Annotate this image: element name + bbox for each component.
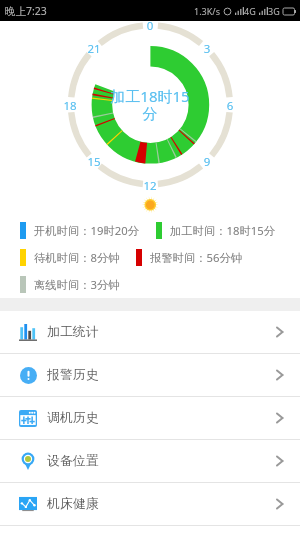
staticText: 报警时间：56分钟 — [150, 250, 243, 265]
staticText: 加工18时15分 — [110, 86, 190, 123]
staticText: 4G — [244, 5, 256, 17]
staticText: 加工统计 — [47, 324, 99, 340]
staticText: 晚上7:23 — [5, 4, 47, 18]
staticText: 18 — [55, 98, 85, 114]
button[interactable]: 调机历史 — [0, 397, 300, 439]
staticText: 3G — [268, 5, 280, 17]
staticText: 9 — [192, 154, 222, 170]
staticText: 15 — [79, 154, 109, 170]
button[interactable]: 加工统计 — [0, 311, 300, 353]
staticText: 开机时间：19时20分 — [34, 223, 139, 238]
button[interactable]: 设备位置 — [0, 440, 300, 482]
staticText: 加工时间：18时15分 — [170, 223, 275, 238]
staticText: 6 — [215, 98, 245, 114]
button[interactable]: 机床健康 — [0, 483, 300, 525]
staticText: 调机历史 — [47, 410, 99, 426]
staticText: 1.3K/s — [194, 5, 220, 17]
staticText: 离线时间：3分钟 — [34, 277, 120, 292]
button[interactable]: 报警历史 — [0, 354, 300, 396]
staticText: 报警历史 — [47, 367, 99, 383]
staticText: 21 — [79, 41, 109, 57]
staticText: 机床健康 — [47, 496, 99, 512]
staticText: 0 — [135, 18, 165, 34]
staticText: 设备位置 — [47, 453, 99, 469]
staticText: 待机时间：8分钟 — [34, 250, 120, 265]
staticText: 3 — [192, 41, 222, 57]
staticText: 12 — [135, 178, 165, 194]
